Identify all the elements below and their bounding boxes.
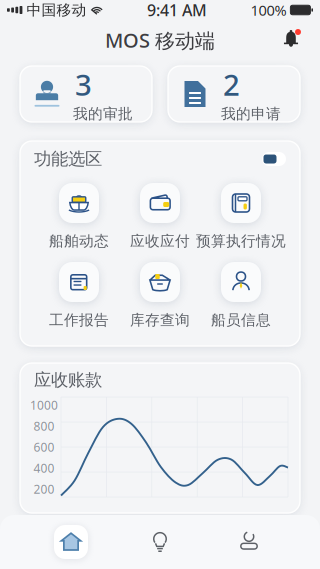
button[interactable]: 工作报告 (38, 262, 119, 329)
staticText: 我的申请 (221, 105, 281, 123)
button[interactable]: 首页 (26, 517, 116, 567)
staticText: 工作报告 (49, 311, 109, 329)
staticText: 3 (75, 65, 92, 104)
button[interactable]: 3 (20, 66, 152, 122)
staticText: 应收应付 (130, 232, 190, 250)
button[interactable]: 库存查询 (119, 262, 200, 329)
staticText: 1000 (30, 397, 58, 413)
staticText: 800 (33, 418, 54, 434)
staticText: 船舶动态 (49, 232, 109, 250)
staticText: 600 (33, 439, 54, 455)
button[interactable]: 预算执行情况 (200, 183, 281, 250)
staticText: 库存查询 (130, 311, 190, 329)
staticText: 我的审批 (73, 105, 133, 123)
staticText: 中国移动 (26, 1, 86, 19)
button[interactable]: 船舶动态 (38, 183, 119, 250)
staticText: 应收账款 (34, 369, 102, 391)
staticText: 功能选区 (34, 148, 102, 170)
button[interactable]: 通知 (278, 27, 304, 51)
staticText: 200 (33, 481, 54, 497)
staticText: 400 (33, 460, 54, 476)
button[interactable]: 2 (168, 66, 300, 122)
button[interactable]: 发现 (130, 517, 190, 567)
staticText: MOS 移动端 (105, 27, 215, 53)
staticText: 2 (223, 65, 240, 104)
button[interactable]: 切换视图 (262, 152, 286, 166)
staticText: 100% (250, 0, 286, 20)
button[interactable]: 船员信息 (200, 262, 281, 329)
button[interactable]: 应收应付 (119, 183, 200, 250)
staticText: 船员信息 (211, 311, 271, 329)
staticText: 9:41 AM (147, 0, 207, 21)
staticText: 预算执行情况 (196, 232, 286, 250)
button[interactable]: 我的 (204, 517, 294, 567)
